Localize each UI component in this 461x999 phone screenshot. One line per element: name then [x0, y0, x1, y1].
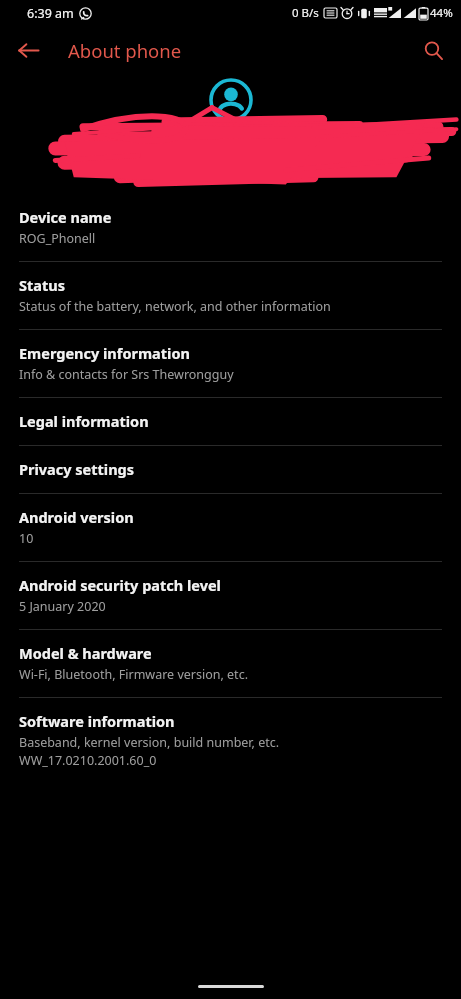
button[interactable]: Status — [0, 262, 461, 329]
staticText: Info & contacts for Srs Thewrongguy — [19, 366, 234, 383]
staticText: WW_17.0210.2001.60_0 — [19, 752, 157, 769]
button[interactable]: Device name — [0, 194, 461, 261]
staticText: Android security patch level — [19, 575, 221, 595]
staticText: Android version — [19, 507, 134, 527]
staticText: Wi-Fi, Bluetooth, Firmware version, etc. — [19, 666, 248, 683]
staticText: 0 B/s — [292, 5, 319, 21]
button[interactable]: Android version — [0, 494, 461, 561]
staticText: Emergency information — [19, 343, 190, 363]
staticText: ROG_Phonell — [19, 230, 96, 247]
button[interactable]: Back — [8, 30, 48, 70]
button[interactable]: Privacy settings — [0, 446, 461, 493]
button[interactable]: Emergency information — [0, 330, 461, 397]
staticText: 10 — [19, 530, 34, 547]
staticText: Privacy settings — [19, 459, 135, 479]
staticText: About phone — [68, 38, 182, 63]
staticText: Model & hardware — [19, 643, 152, 663]
button[interactable]: Legal information — [0, 398, 461, 445]
staticText: Baseband, kernel version, build number, … — [19, 734, 280, 751]
button[interactable]: Android security patch level — [0, 562, 461, 629]
staticText: Status of the battery, network, and othe… — [19, 298, 331, 315]
staticText: 44% — [430, 5, 453, 21]
staticText: Device name — [19, 207, 112, 227]
staticText: 6:39 am — [27, 5, 74, 22]
staticText: 5 January 2020 — [19, 598, 106, 615]
button[interactable]: Search — [413, 30, 453, 70]
staticText: Software information — [19, 711, 175, 731]
staticText: Status — [19, 275, 65, 295]
staticText: Legal information — [19, 411, 149, 431]
button[interactable]: Software information — [0, 698, 461, 783]
button[interactable]: Model & hardware — [0, 630, 461, 697]
